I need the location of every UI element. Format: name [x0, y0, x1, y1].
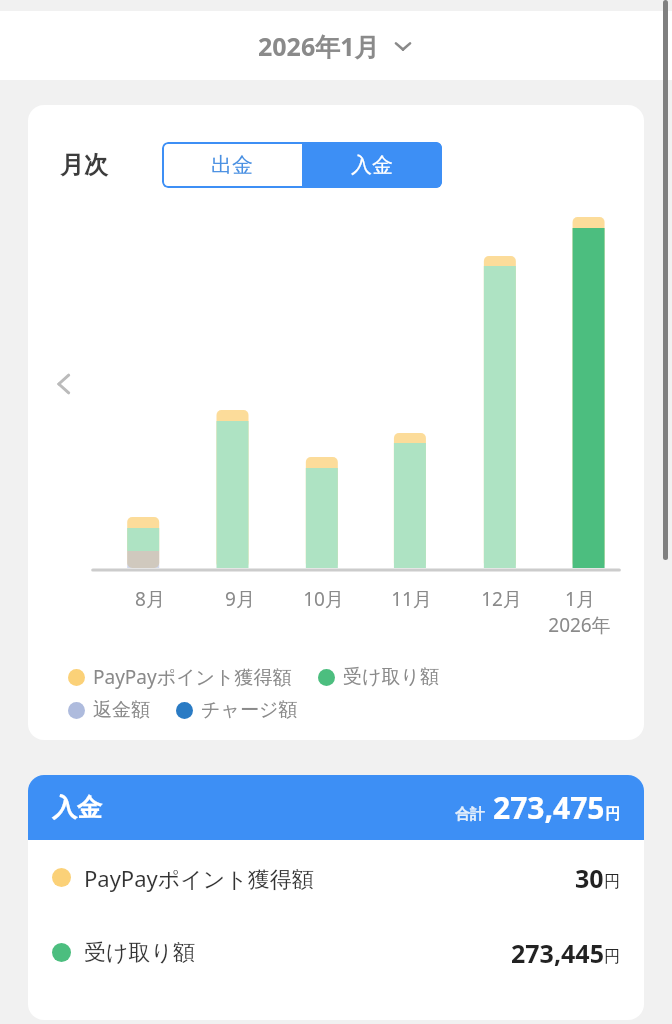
- staticText: 円: [604, 872, 620, 892]
- staticText: 出金: [211, 152, 253, 178]
- staticText: 11月: [391, 586, 432, 612]
- staticText: 1月: [565, 586, 595, 612]
- staticText: 9月: [225, 586, 255, 612]
- staticText: 受け取り額: [84, 939, 196, 967]
- staticText: 返金額: [93, 698, 150, 722]
- staticText: 2026年: [548, 612, 611, 638]
- staticText: 2026年1月: [258, 29, 380, 63]
- staticText: 10月: [303, 586, 344, 612]
- button[interactable]: 前の期間: [42, 362, 86, 406]
- button[interactable]: 出金: [162, 142, 302, 188]
- staticText: 円: [604, 947, 620, 967]
- staticText: 円: [605, 805, 620, 824]
- staticText: 合計: [455, 805, 485, 824]
- button[interactable]: 入金: [302, 142, 442, 188]
- staticText: 入金: [351, 152, 393, 178]
- staticText: 入金: [52, 792, 102, 823]
- staticText: 12月: [481, 586, 522, 612]
- staticText: 273,445: [511, 936, 604, 970]
- button[interactable]: 2026年1月: [250, 25, 422, 67]
- staticText: PayPayポイント獲得額: [93, 664, 292, 690]
- staticText: 273,475: [493, 787, 605, 828]
- staticText: 月次: [60, 150, 108, 180]
- staticText: PayPayポイント獲得額: [84, 863, 314, 893]
- staticText: チャージ額: [201, 698, 298, 722]
- button[interactable]: PayPayポイント獲得額: [28, 840, 644, 915]
- staticText: 受け取り額: [343, 665, 439, 689]
- button[interactable]: 受け取り額: [28, 915, 644, 990]
- staticText: 8月: [135, 586, 165, 612]
- staticText: 30: [575, 861, 604, 895]
